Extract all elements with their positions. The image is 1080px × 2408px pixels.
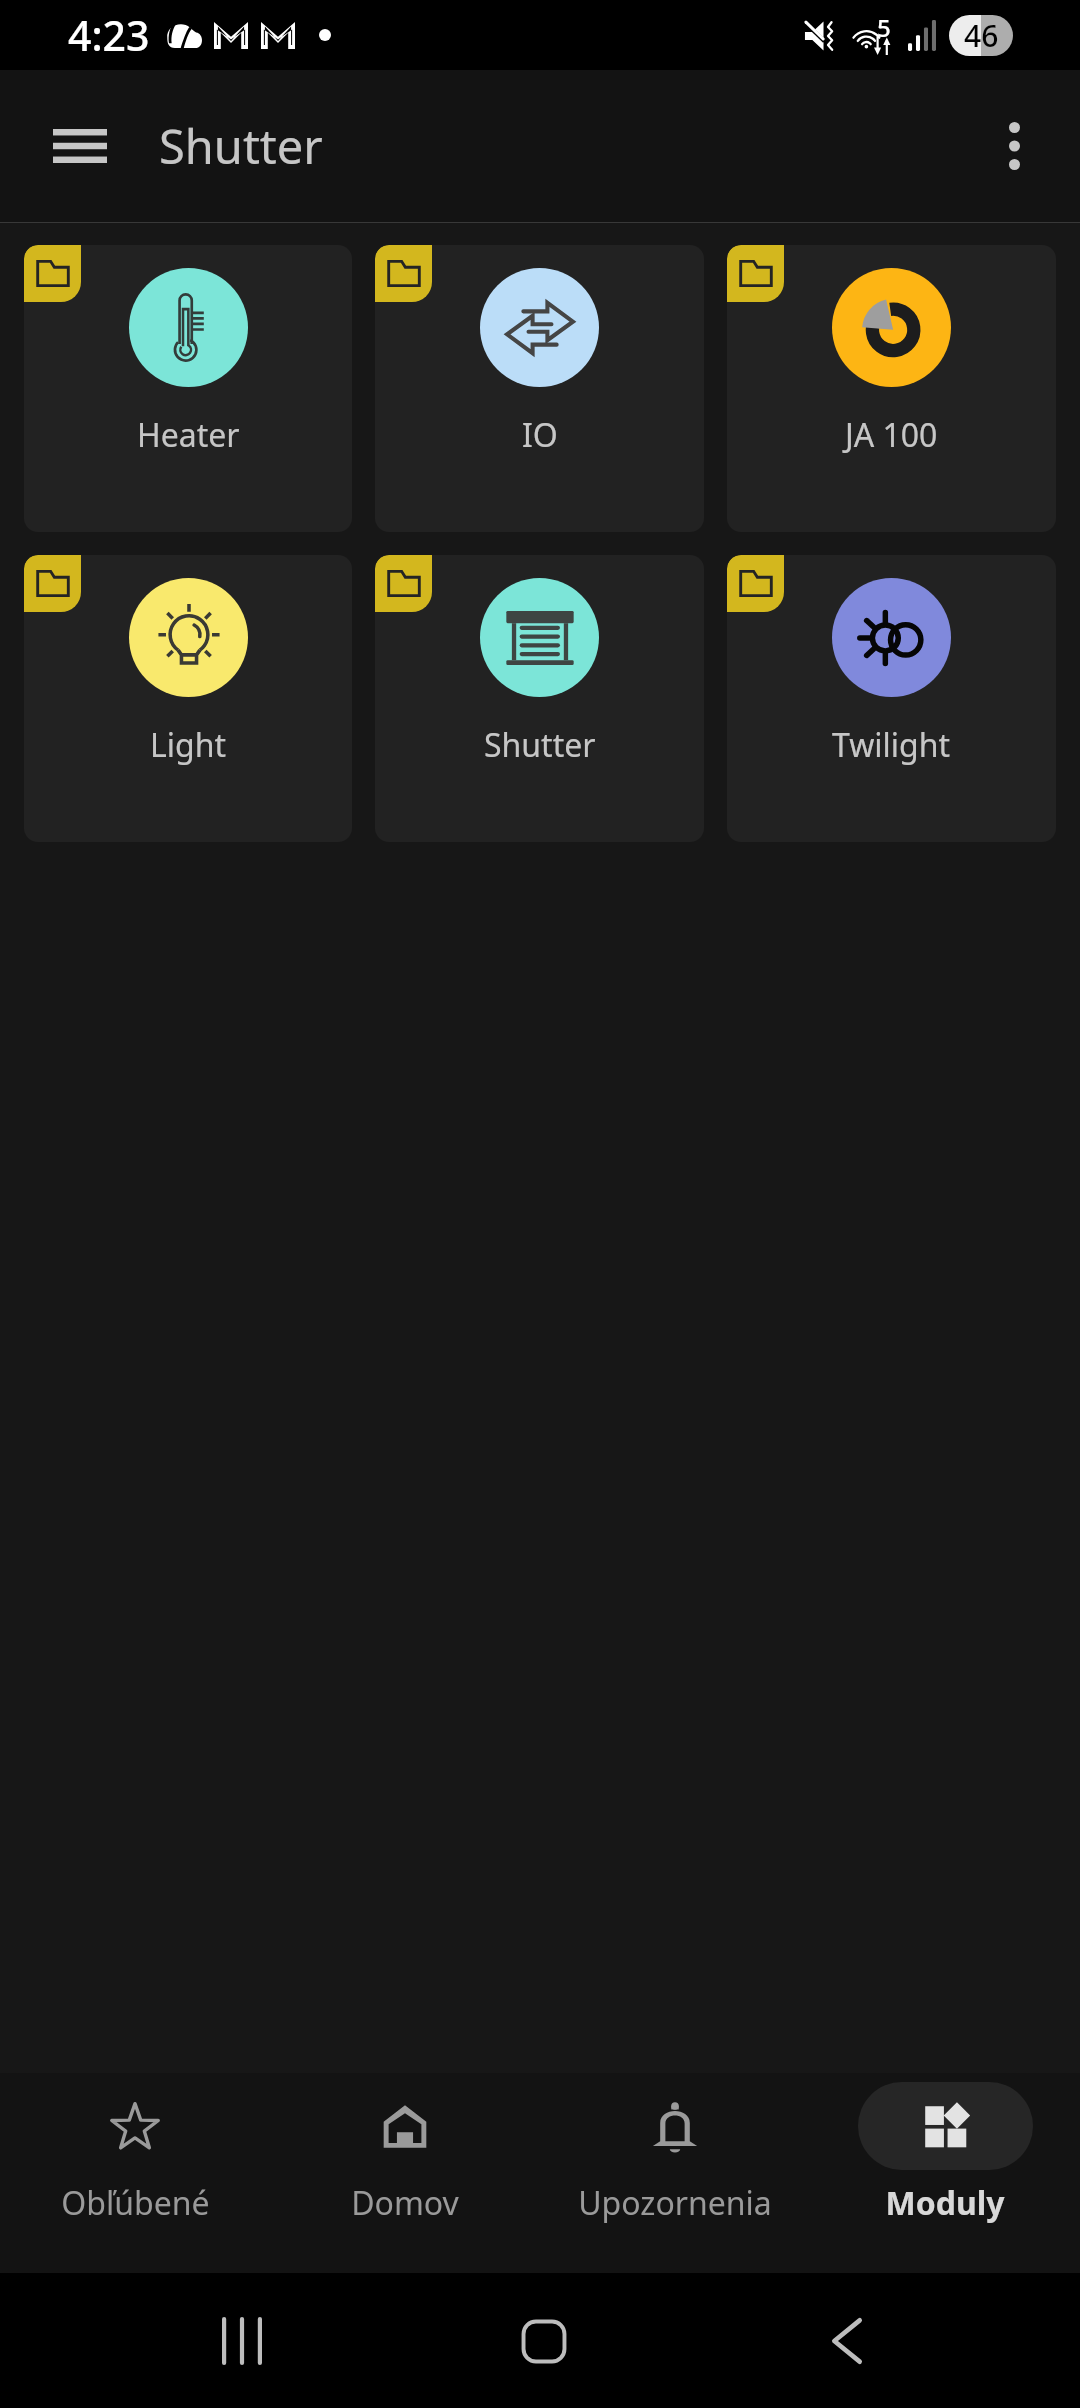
staticText: Twilight [832,723,951,767]
staticText: Shutter [159,114,323,178]
button[interactable]: Open navigation menu [26,92,134,200]
staticText: Heater [137,413,240,457]
staticText: Moduly [885,2181,1005,2225]
button[interactable]: Moduly [810,2073,1080,2273]
staticText: 4:23 [68,7,150,63]
button[interactable]: Shutter [375,555,704,842]
button[interactable]: Home [474,2286,614,2396]
staticText: JA 100 [845,413,938,457]
staticText: IO [522,413,558,457]
button[interactable]: Upozornenia [540,2073,810,2273]
staticText: 46 [964,15,999,56]
button[interactable]: Recent apps [172,2286,312,2396]
button[interactable]: Back [777,2286,917,2396]
staticText: Domov [351,2181,459,2225]
staticText: Upozornenia [578,2181,772,2225]
button[interactable]: Twilight [727,555,1056,842]
staticText: Shutter [484,723,596,767]
button[interactable]: Obľúbené [0,2073,270,2273]
staticText: 5 [877,11,891,44]
button[interactable]: JA 100 [727,245,1056,532]
button[interactable]: More options [968,100,1060,192]
button[interactable]: Heater [24,245,352,532]
button[interactable]: Domov [270,2073,540,2273]
button[interactable]: Light [24,555,352,842]
staticText: Light [150,723,227,767]
button[interactable]: IO [375,245,704,532]
staticText: Obľúbené [61,2181,210,2225]
